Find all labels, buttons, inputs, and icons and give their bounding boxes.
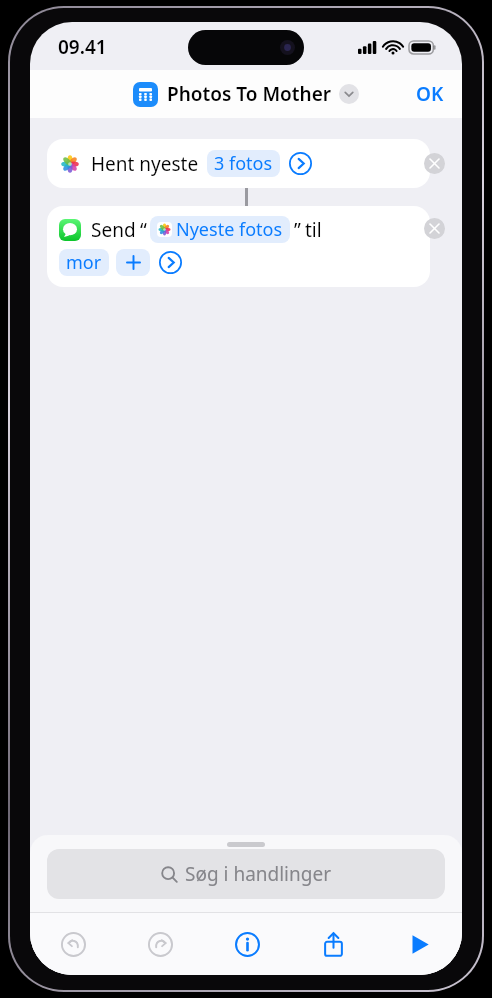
button[interactable]: Info: [204, 913, 290, 975]
staticText: til: [305, 217, 322, 243]
button[interactable]: mor: [59, 249, 109, 276]
staticText: Nyeste fotos: [176, 217, 283, 242]
staticText: mor: [66, 250, 102, 275]
button[interactable]: Photos To Mother: [133, 81, 359, 107]
button[interactable]: 3 fotos: [207, 150, 280, 177]
button[interactable]: OK: [398, 73, 462, 115]
button[interactable]: Vis detaljer: [159, 251, 182, 274]
button[interactable]: Fjern handling: [424, 218, 445, 239]
button[interactable]: Gentag: [117, 913, 204, 975]
staticText: 3 fotos: [214, 151, 273, 176]
staticText: 09.41: [58, 34, 107, 60]
staticText: Photos To Mother: [167, 81, 331, 107]
staticText: OK: [416, 81, 444, 107]
button[interactable]: Fortryd: [30, 913, 117, 975]
staticText: Hent nyeste: [91, 151, 199, 177]
other: Vis menu: [339, 84, 359, 104]
button[interactable]: Hent nyeste: [47, 139, 430, 188]
staticText: “: [140, 217, 147, 243]
button[interactable]: Tilføj modtager: [116, 249, 150, 276]
button[interactable]: Del: [290, 913, 376, 975]
button[interactable]: Send: [47, 206, 430, 287]
staticText: Send: [91, 217, 136, 243]
button[interactable]: Kør: [376, 913, 462, 975]
button[interactable]: Søg i handlinger: [47, 849, 445, 899]
staticText: Søg i handlinger: [185, 861, 332, 887]
button[interactable]: Nyeste fotos: [150, 216, 290, 243]
button[interactable]: Fjern handling: [424, 153, 445, 174]
staticText: ”: [294, 217, 301, 243]
button[interactable]: Vis detaljer: [289, 152, 312, 175]
